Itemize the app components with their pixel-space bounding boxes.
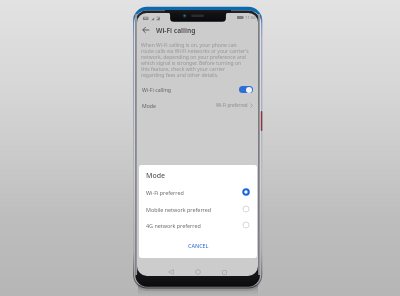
staticText: When Wi-Fi calling is on, your phone can…	[141, 42, 249, 79]
staticText: Mode	[142, 102, 156, 109]
button[interactable]: Wi-Fi calling	[137, 81, 258, 97]
button[interactable]: Home	[192, 266, 204, 276]
staticText: Wi-Fi calling	[142, 86, 172, 93]
other: Back	[142, 26, 150, 34]
staticText: CANCEL	[188, 242, 209, 249]
button[interactable]: 4G network preferred	[139, 217, 257, 233]
button[interactable]: Back	[137, 19, 258, 41]
button[interactable]: Wi-Fi preferred	[139, 184, 257, 200]
staticText: Wi-Fi preferred	[146, 189, 184, 196]
button[interactable]: Mobile network preferred	[139, 201, 257, 217]
staticText: Wi-Fi calling	[156, 26, 196, 35]
button[interactable]: Recents	[218, 266, 230, 276]
button[interactable]: Back	[165, 266, 177, 276]
button[interactable]: CANCEL	[183, 239, 213, 252]
staticText: 4G network preferred	[146, 222, 201, 229]
staticText: Mode	[146, 171, 166, 181]
staticText: 11:56	[245, 15, 256, 21]
button[interactable]: Mode	[137, 98, 258, 112]
staticText: Mobile network preferred	[146, 206, 212, 213]
staticText: Wi-Fi preferred	[216, 102, 248, 108]
